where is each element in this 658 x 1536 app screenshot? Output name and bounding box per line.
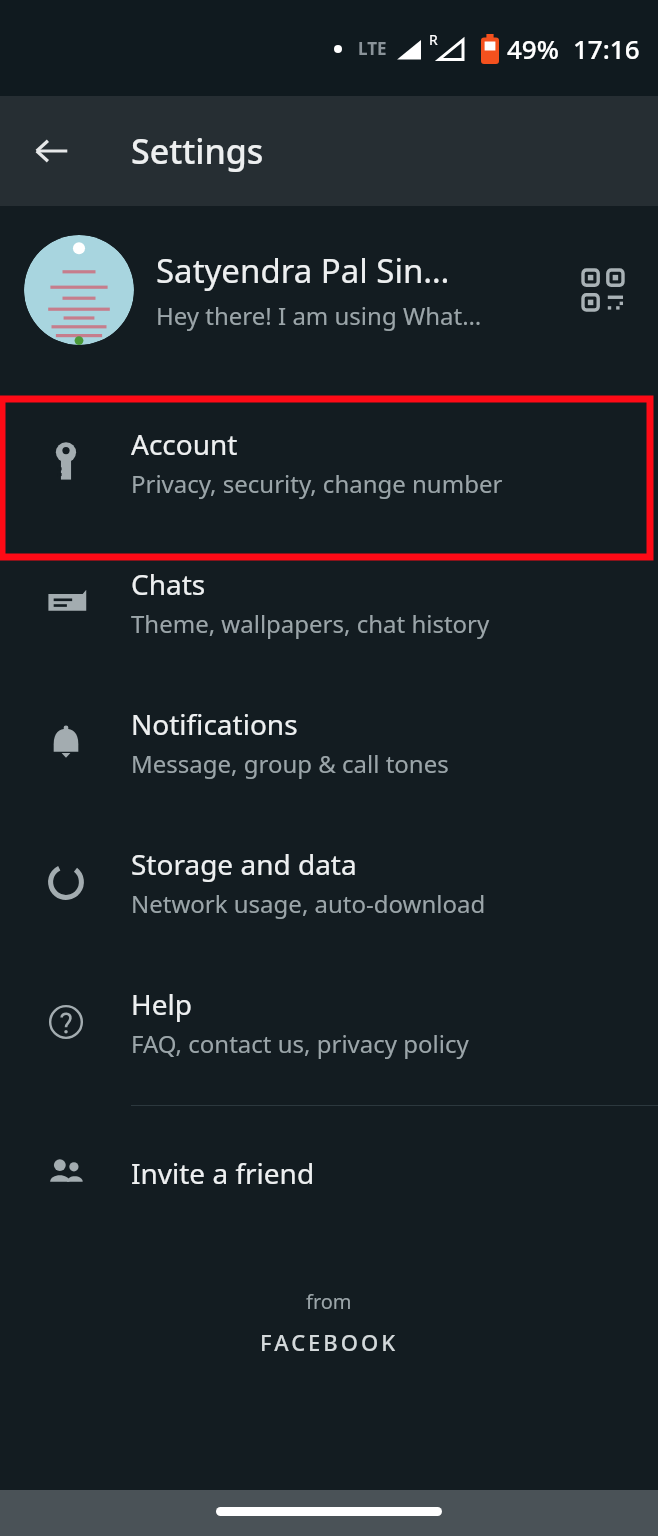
staticText: 17:16 [573, 31, 640, 66]
staticText: Storage and data [131, 845, 357, 883]
button[interactable]: QR code [572, 259, 634, 321]
button[interactable]: Back [22, 121, 82, 181]
staticText: Privacy, security, change number [131, 467, 503, 500]
staticText: Satyendra Pal Sin… [156, 248, 450, 293]
staticText: Network usage, auto-download [131, 887, 486, 920]
staticText: FAQ, contact us, privacy policy [131, 1027, 469, 1060]
staticText: FACEBOOK [260, 1327, 399, 1357]
button[interactable]: Notifications [0, 672, 658, 812]
button[interactable]: Chats [0, 532, 658, 672]
staticText: 49% [507, 31, 559, 66]
staticText: Account [131, 425, 238, 463]
staticText: Theme, wallpapers, chat history [131, 607, 490, 640]
staticText: from [306, 1288, 352, 1315]
staticText: Invite a friend [131, 1154, 315, 1192]
button[interactable]: Satyendra Pal Sin… [0, 206, 658, 374]
button[interactable]: Storage and data [0, 812, 658, 952]
staticText: Help [131, 985, 192, 1023]
staticText: Settings [131, 128, 264, 174]
staticText: Notifications [131, 705, 298, 743]
button[interactable]: Invite a friend [0, 1118, 658, 1228]
staticText: Chats [131, 565, 206, 603]
staticText: LTE [358, 37, 387, 60]
button[interactable]: Help [0, 952, 658, 1092]
button[interactable]: Account [0, 392, 658, 532]
staticText: Hey there! I am using What… [156, 299, 482, 332]
staticText: R [429, 30, 438, 49]
staticText: Message, group & call tones [131, 747, 449, 780]
